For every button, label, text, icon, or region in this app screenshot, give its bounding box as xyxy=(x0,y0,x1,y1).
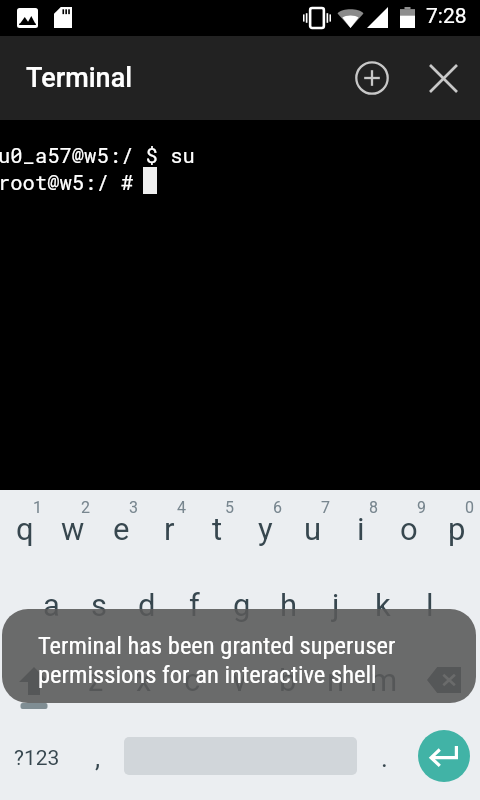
button[interactable]: 7 xyxy=(288,492,336,566)
staticText: . xyxy=(381,743,388,773)
staticText: s xyxy=(91,587,107,623)
button[interactable]: h xyxy=(265,568,312,642)
button[interactable]: z xyxy=(72,643,120,717)
staticText: l xyxy=(426,587,434,623)
button[interactable]: b xyxy=(264,643,312,717)
staticText: u xyxy=(304,511,322,547)
button[interactable]: c xyxy=(168,643,216,717)
staticText: d xyxy=(138,587,156,623)
staticText: i xyxy=(357,511,365,547)
button[interactable]: 4 xyxy=(144,492,192,566)
staticText: Terminal xyxy=(26,62,133,94)
button[interactable]: 8 xyxy=(336,492,384,566)
staticText: g xyxy=(233,587,251,623)
button[interactable]: Backspace xyxy=(408,643,480,717)
staticText: 4 xyxy=(177,498,186,517)
staticText: y xyxy=(258,511,273,547)
button[interactable]: . xyxy=(357,719,411,793)
button[interactable]: Enter xyxy=(418,730,470,782)
button[interactable]: m xyxy=(360,643,408,717)
staticText: j xyxy=(332,587,340,623)
staticText: 7:28 xyxy=(426,4,467,29)
staticText: p xyxy=(448,511,466,547)
staticText: 0 xyxy=(465,498,474,517)
staticText: f xyxy=(189,587,200,623)
button[interactable]: New session xyxy=(348,54,396,102)
button[interactable]: 5 xyxy=(192,492,240,566)
button[interactable]: g xyxy=(218,568,265,642)
staticText: root@w5:/ # xyxy=(0,169,134,196)
staticText: , xyxy=(95,743,101,773)
button[interactable]: 6 xyxy=(240,492,288,566)
button[interactable]: 1 xyxy=(0,492,48,566)
button[interactable]: l xyxy=(406,568,453,642)
staticText: n xyxy=(327,662,345,698)
staticText: k xyxy=(375,587,391,623)
button[interactable]: Shift xyxy=(0,643,72,717)
button[interactable]: x xyxy=(120,643,168,717)
button[interactable]: j xyxy=(312,568,359,642)
button[interactable]: , xyxy=(72,719,124,793)
staticText: u0_a57@w5:/ $ su xyxy=(0,142,195,169)
button[interactable]: 9 xyxy=(384,492,432,566)
button[interactable]: 0 xyxy=(432,492,480,566)
staticText: v xyxy=(232,662,248,698)
staticText: Terminal has been granted superuser xyxy=(38,631,396,660)
staticText: 6 xyxy=(273,498,282,517)
staticText: ?123 xyxy=(14,746,60,771)
staticText: 8 xyxy=(369,498,378,517)
button[interactable]: v xyxy=(216,643,264,717)
staticText: t xyxy=(212,511,223,547)
button[interactable]: d xyxy=(123,568,171,642)
staticText: q xyxy=(16,511,34,547)
staticText: o xyxy=(400,511,418,547)
staticText: m xyxy=(370,662,398,698)
staticText: h xyxy=(280,587,298,623)
staticText: permissions for an interactive shell xyxy=(38,660,377,689)
staticText: 9 xyxy=(417,498,426,517)
staticText: 7 xyxy=(321,498,330,517)
staticText: x xyxy=(136,662,152,698)
staticText: r xyxy=(164,511,175,547)
staticText: a xyxy=(43,587,60,623)
staticText: z xyxy=(88,662,104,698)
button[interactable]: ?123 xyxy=(0,719,72,793)
button[interactable]: k xyxy=(359,568,406,642)
button[interactable]: s xyxy=(75,568,123,642)
staticText: 1 xyxy=(33,498,42,517)
button[interactable]: f xyxy=(171,568,218,642)
staticText: e xyxy=(113,511,130,547)
staticText: b xyxy=(279,662,297,698)
staticText: c xyxy=(184,662,201,698)
staticText: 2 xyxy=(81,498,90,517)
staticText: 5 xyxy=(225,498,234,517)
button[interactable]: 3 xyxy=(96,492,144,566)
staticText: 3 xyxy=(129,498,138,517)
button[interactable]: 2 xyxy=(48,492,96,566)
button[interactable]: n xyxy=(312,643,360,717)
button[interactable]: a xyxy=(27,568,75,642)
staticText: w xyxy=(61,511,85,547)
button[interactable]: Close xyxy=(419,54,467,102)
